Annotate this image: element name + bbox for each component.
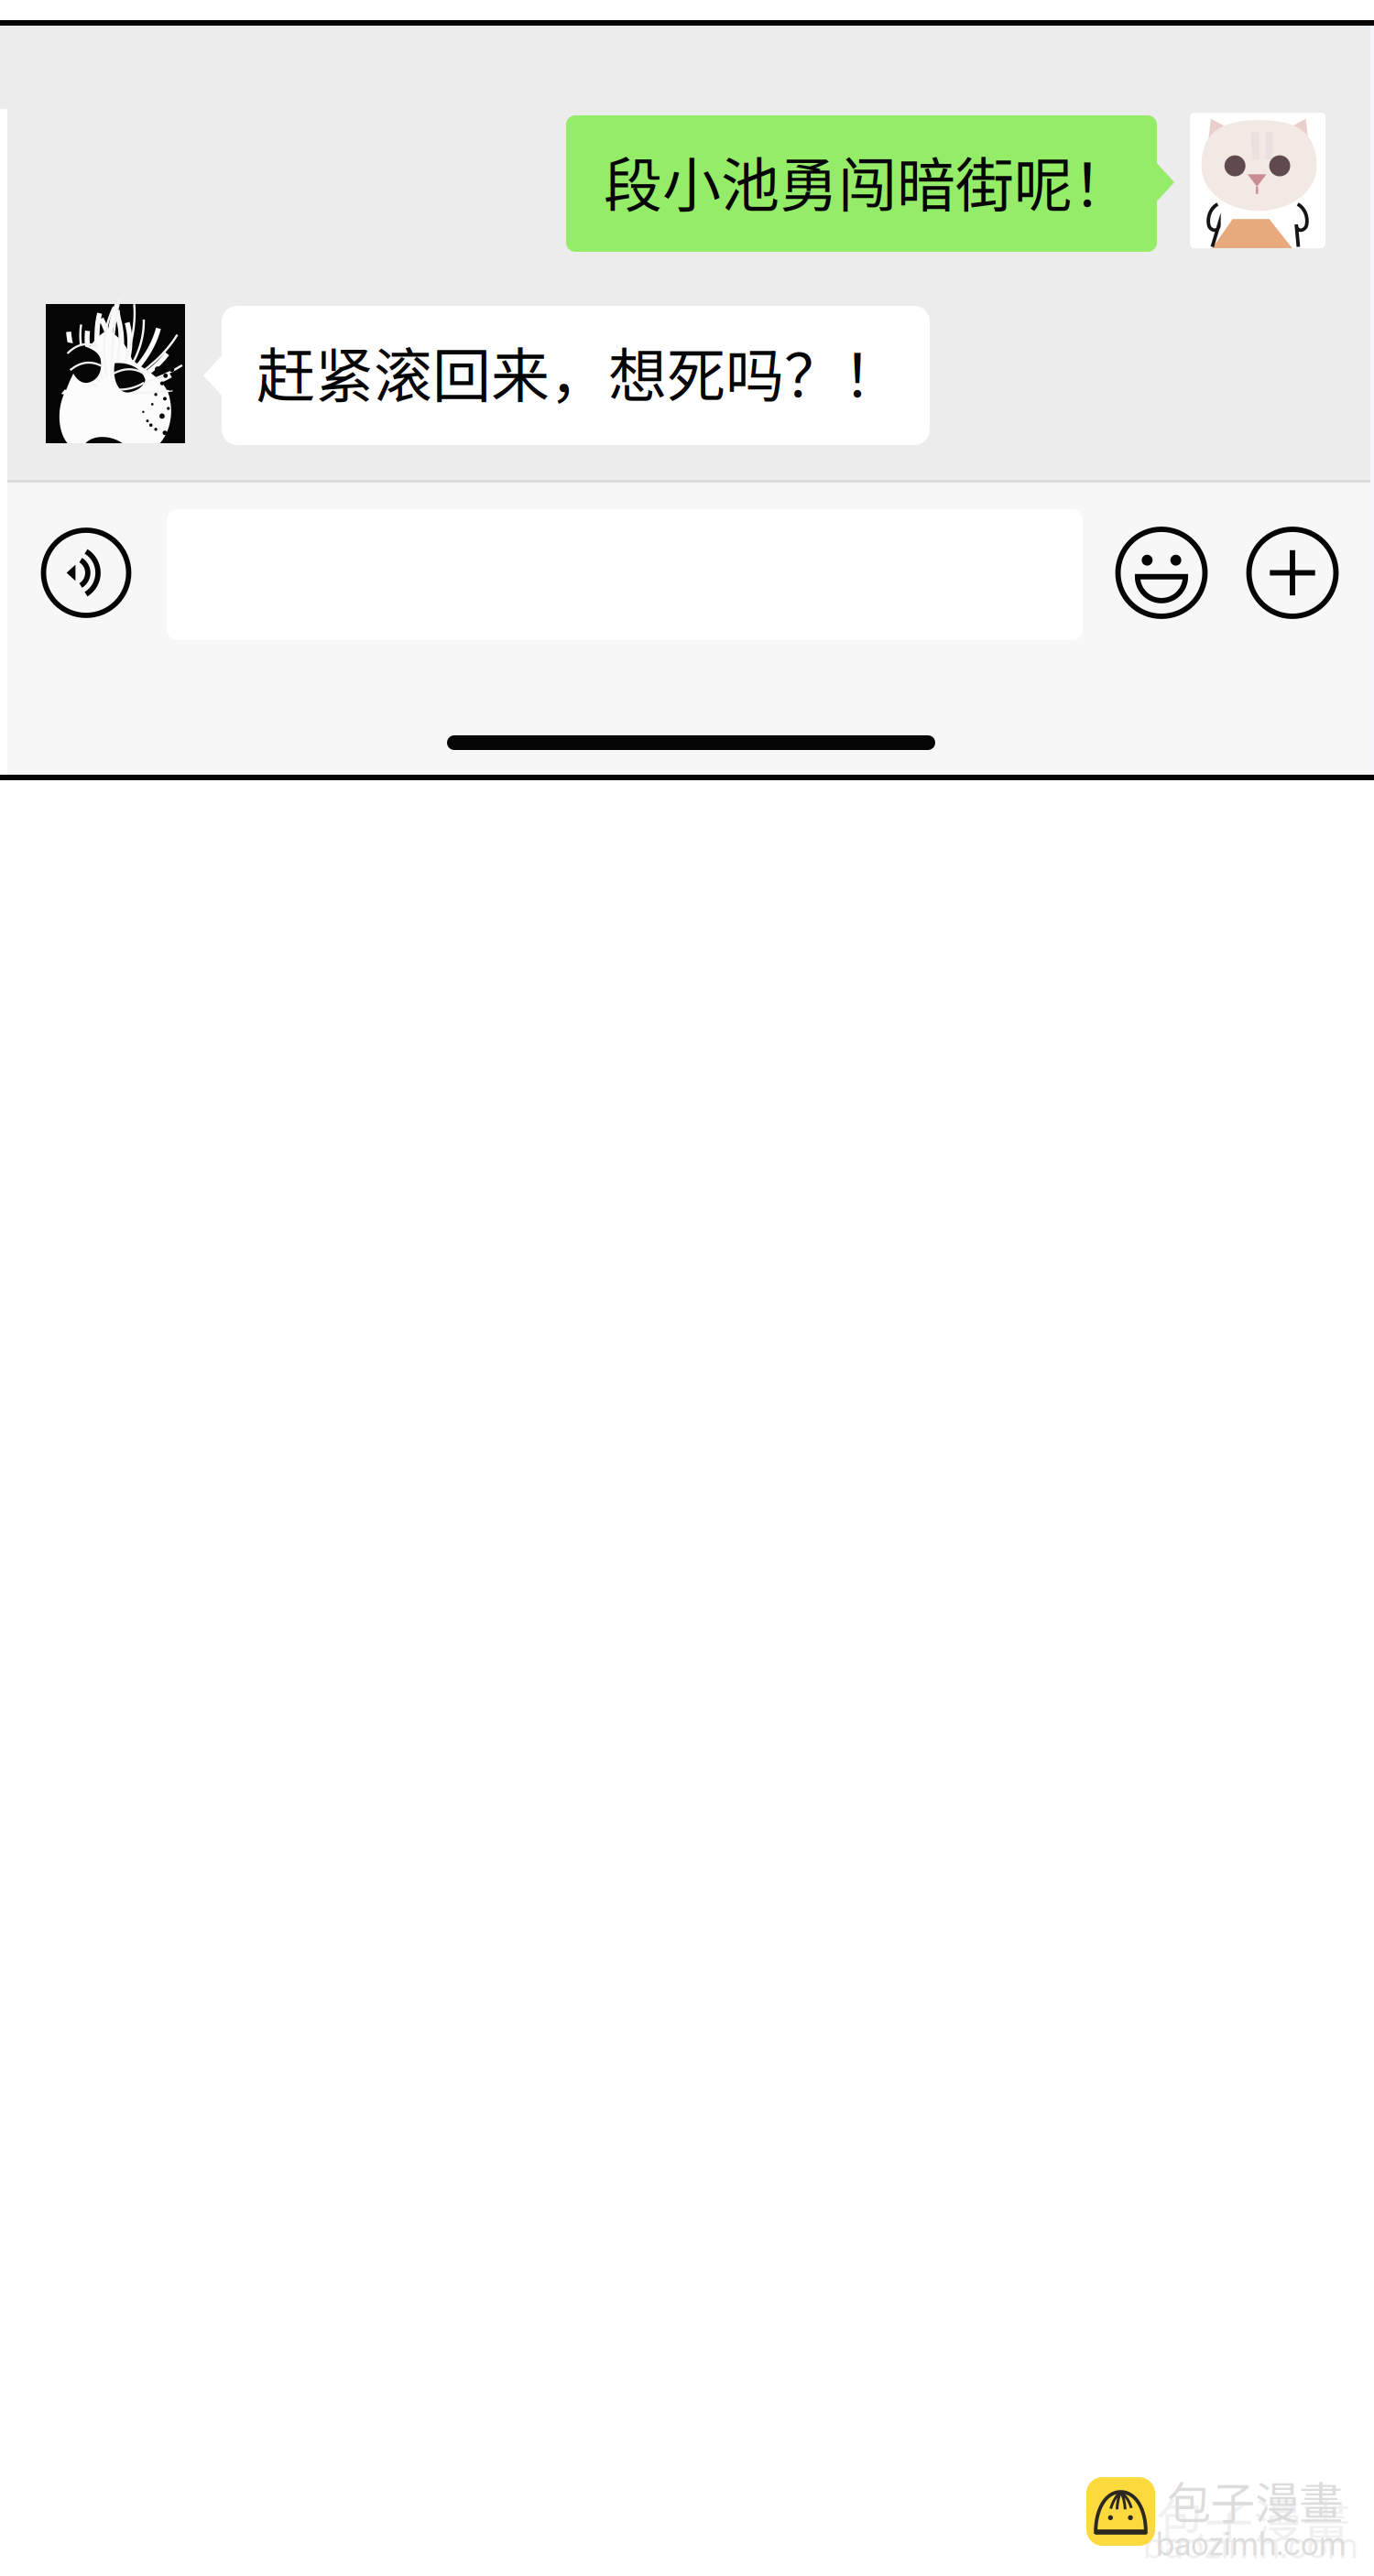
staticText: 赶紧滚回来，想死吗？！ xyxy=(256,329,901,414)
staticText: 包子漫畫 xyxy=(1156,2484,1350,2554)
staticText: baozimh.com xyxy=(1143,2523,1358,2567)
button[interactable]: Voice message xyxy=(22,507,150,638)
button[interactable]: 段小池勇闯暗街呢！ xyxy=(566,115,1174,252)
button[interactable]: Sender avatar xyxy=(46,304,185,443)
staticText: 段小池勇闯暗街呢！ xyxy=(604,138,1131,223)
button[interactable]: 赶紧滚回来，想死吗？！ xyxy=(203,306,930,445)
button[interactable]: Contact avatar xyxy=(1190,113,1325,248)
button[interactable]: More xyxy=(1228,507,1357,638)
button[interactable]: Emoji xyxy=(1097,507,1226,638)
staticText: baozimh.com xyxy=(1156,2525,1347,2563)
staticText: 包子漫畫 xyxy=(1167,2468,1343,2532)
